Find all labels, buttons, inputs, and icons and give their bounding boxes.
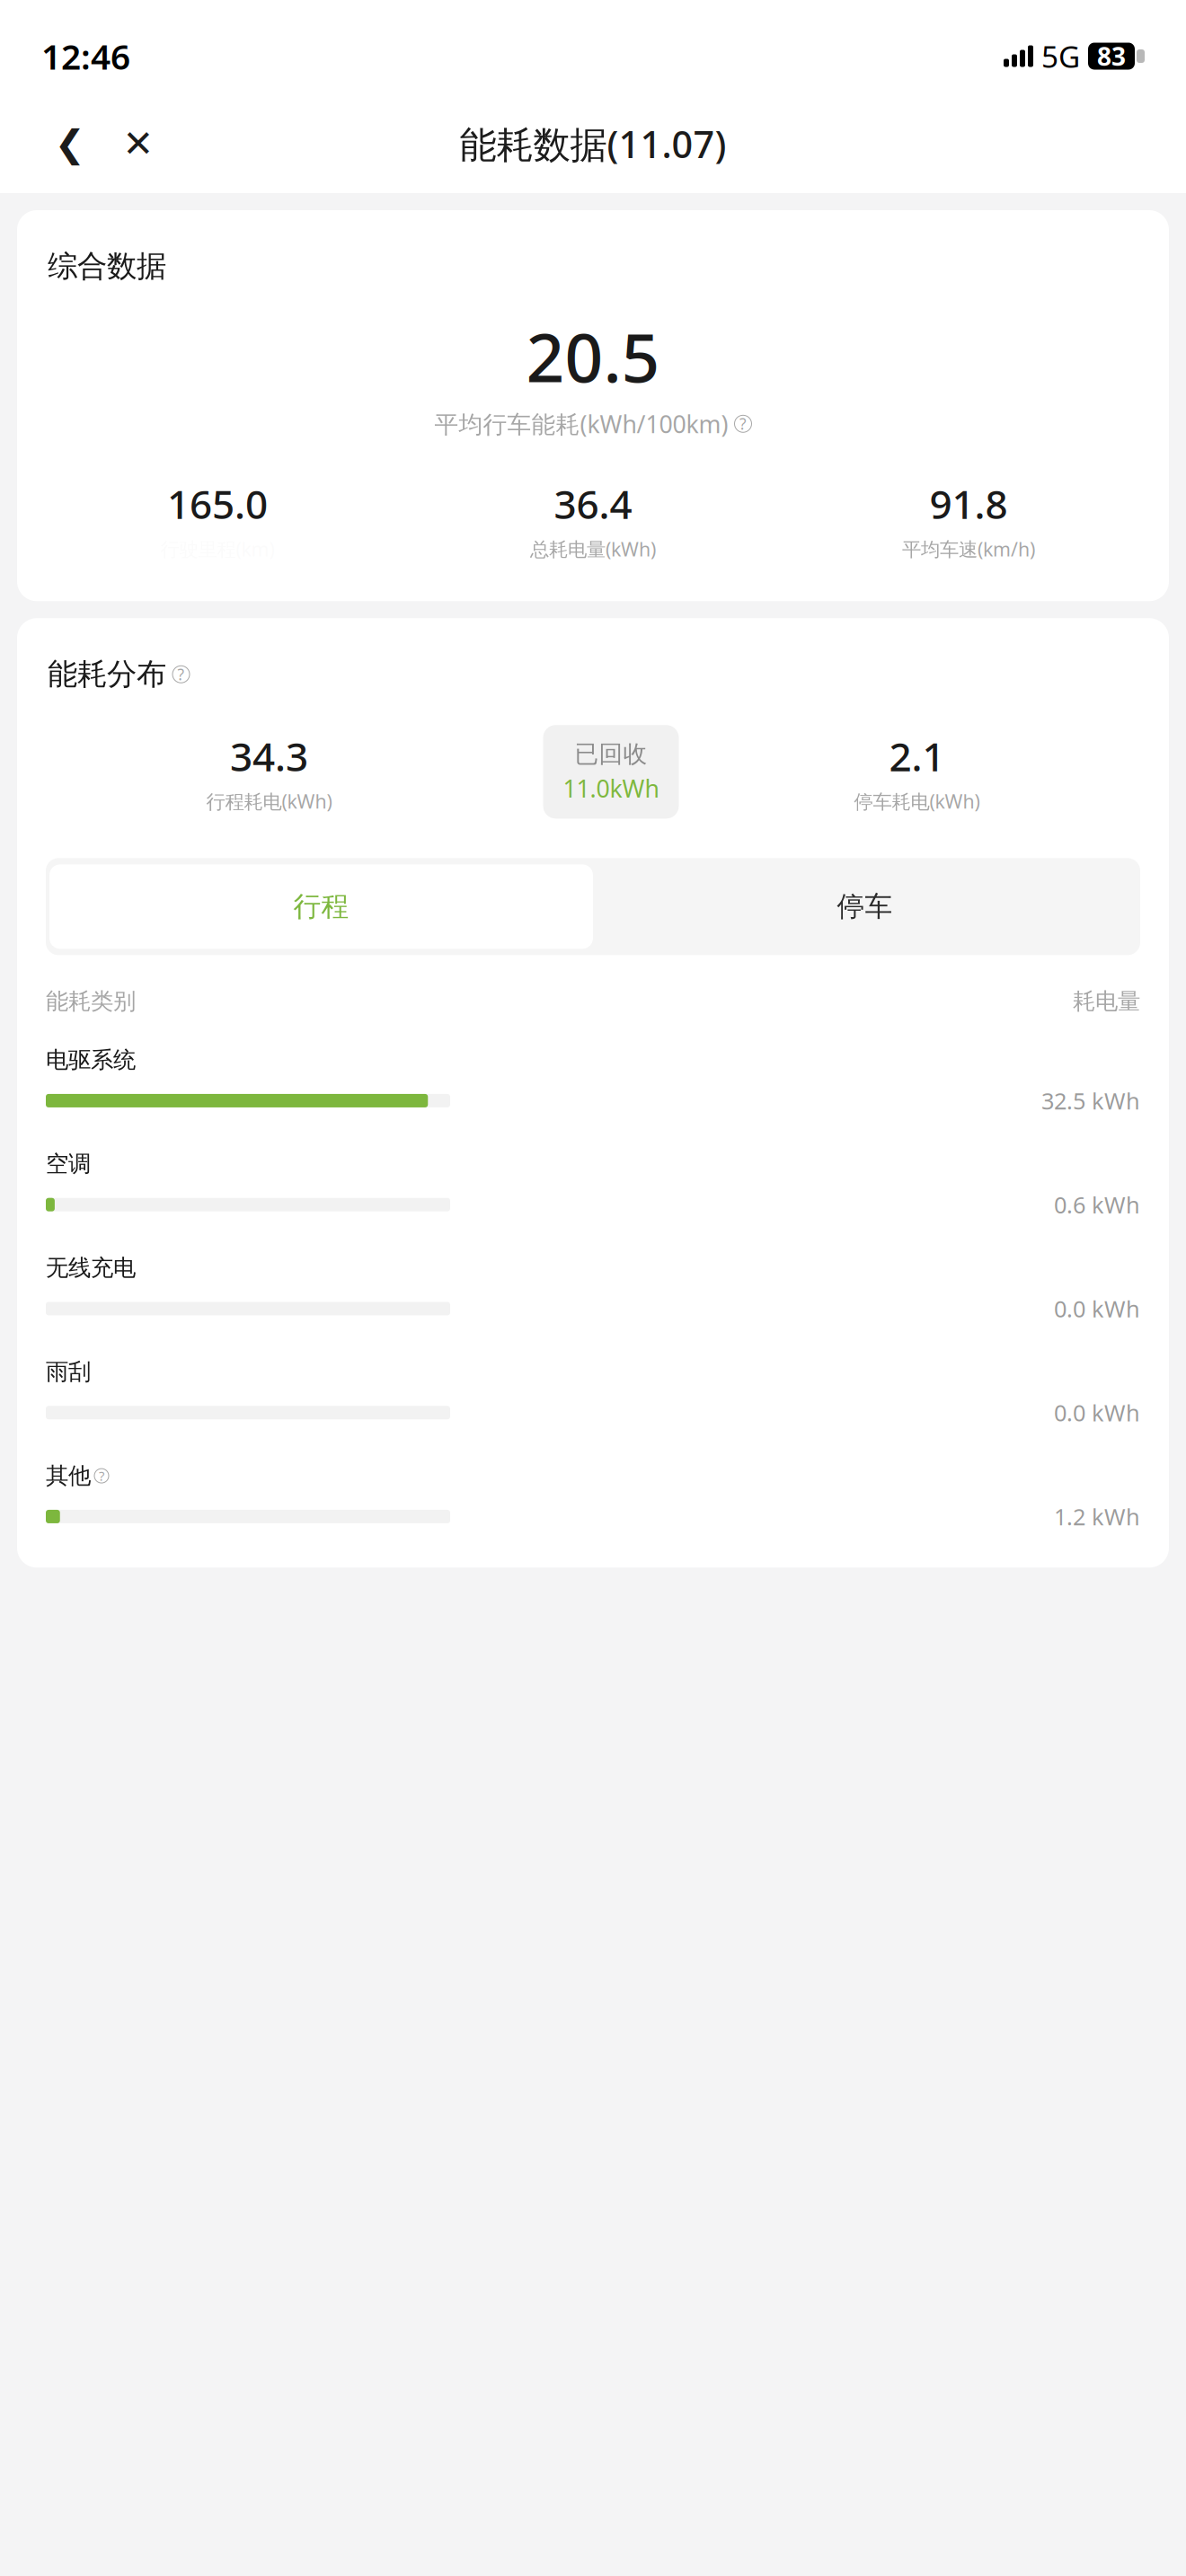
staticText: 平均车速(km/h) [902,536,1035,562]
button[interactable]: Back [36,110,104,178]
staticText: ✕ [123,123,154,165]
staticText: 0.0 kWh [1054,1397,1140,1428]
staticText: 总耗电量(kWh) [530,536,656,562]
staticText: 空调 [46,1150,91,1178]
staticText: ? [99,1467,104,1485]
staticText: 91.8 [929,477,1008,530]
button[interactable]: 停车 [593,864,1137,949]
staticText: 1.2 kWh [1054,1501,1140,1532]
staticText: 耗电量 [1073,987,1140,1015]
staticText: 0.6 kWh [1054,1190,1140,1220]
staticText: ? [177,664,185,685]
staticText: 34.3 [230,730,308,782]
staticText: 165.0 [167,477,268,530]
staticText: 能耗类别 [46,987,136,1015]
staticText: ? [739,413,747,434]
staticText: 无线充电 [46,1254,136,1282]
staticText: 停车耗电(kWh) [854,788,980,814]
staticText: ❮ [54,123,86,165]
staticText: 11.0kWh [563,772,659,804]
staticText: 行程耗电(kWh) [206,788,332,814]
staticText: 平均行车能耗(kWh/100km) [434,408,728,440]
staticText: 综合数据 [48,248,166,285]
staticText: 20.5 [526,312,660,401]
staticText: 停车 [837,890,893,924]
staticText: 83 [1097,39,1126,73]
button[interactable]: 行程 [49,864,593,949]
staticText: 雨刮 [46,1358,91,1386]
staticText: 电驱系统 [46,1046,136,1074]
button[interactable]: Close [104,110,173,178]
staticText: 已回收 [575,739,647,769]
staticText: 5G [1041,36,1080,76]
staticText: 12:46 [41,33,130,79]
staticText: 32.5 kWh [1041,1086,1140,1116]
staticText: 36.4 [554,477,632,530]
staticText: 其他 [46,1462,91,1490]
staticText: 能耗数据(11.07) [460,119,726,168]
staticText: 2.1 [889,730,945,782]
staticText: 行程 [293,890,349,924]
staticText: 能耗分布 [48,656,166,693]
staticText: 0.0 kWh [1054,1293,1140,1324]
